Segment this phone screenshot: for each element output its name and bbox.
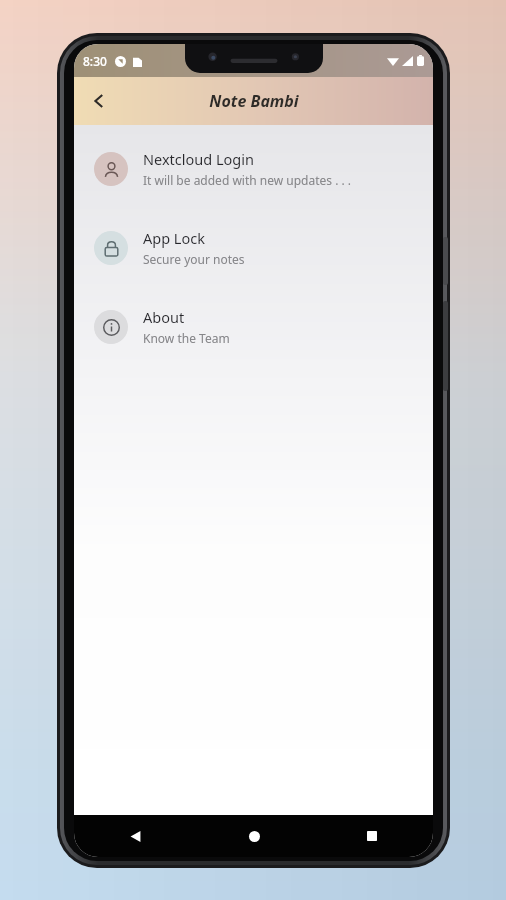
- staticText: Note Bambi: [209, 90, 299, 112]
- staticText: It will be added with new updates . . .: [143, 172, 352, 188]
- staticText: Secure your notes: [143, 251, 245, 267]
- staticText: About: [143, 307, 185, 327]
- staticText: Nextcloud Login: [143, 149, 254, 169]
- button[interactable]: Nextcloud Login: [74, 143, 433, 194]
- staticText: App Lock: [143, 228, 205, 248]
- button[interactable]: Back: [78, 80, 120, 122]
- button[interactable]: Recent apps: [355, 819, 389, 853]
- button[interactable]: Back: [118, 819, 152, 853]
- staticText: 8:30: [83, 53, 107, 69]
- staticText: Know the Team: [143, 330, 230, 346]
- button[interactable]: Home: [237, 819, 271, 853]
- button[interactable]: About: [74, 301, 433, 352]
- button[interactable]: App Lock: [74, 222, 433, 273]
